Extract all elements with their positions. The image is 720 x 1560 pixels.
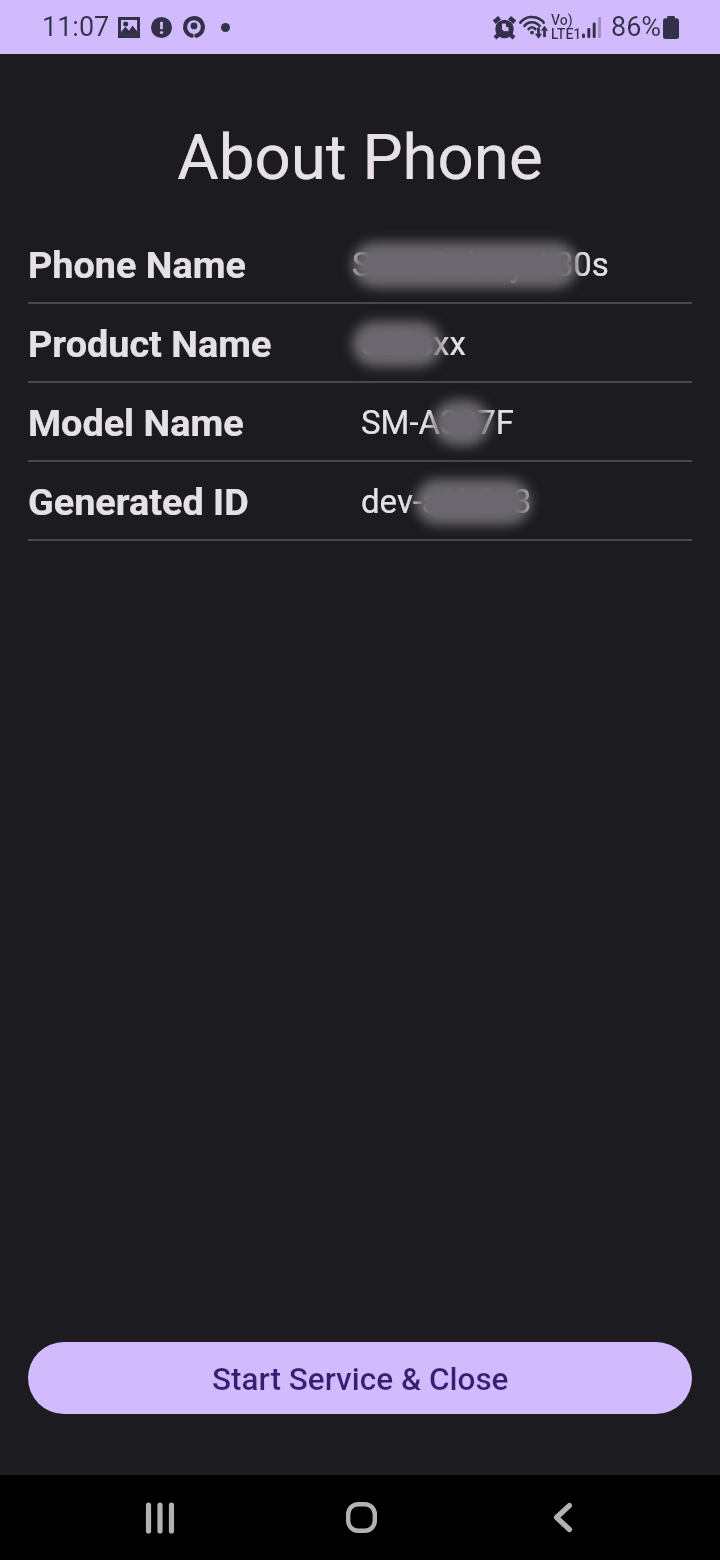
button[interactable]: Back [443, 1475, 683, 1560]
staticText: 86% [611, 11, 662, 43]
staticText: 11:07 [42, 11, 110, 43]
button[interactable]: Generated ID [0, 462, 720, 541]
staticText: About Phone [0, 120, 720, 195]
button[interactable]: Home [241, 1475, 481, 1560]
staticText: LTE1 [551, 26, 582, 42]
staticText: Sam Galaxy A30s [352, 245, 609, 284]
staticText: Start Service & Close [212, 1361, 509, 1398]
staticText: SM-A307F [361, 403, 514, 442]
button[interactable]: Recent apps [40, 1475, 280, 1560]
staticText: Vo) [551, 12, 573, 28]
staticText: Generated ID [28, 480, 249, 524]
staticText: dev-a1b2c3 [361, 482, 532, 521]
staticText: a30sxx [361, 324, 466, 363]
staticText: Phone Name [28, 243, 246, 287]
button[interactable]: Model Name [0, 383, 720, 462]
staticText: Product Name [28, 322, 272, 366]
button[interactable]: Start Service & Close [28, 1342, 692, 1414]
staticText: Model Name [28, 401, 244, 445]
button[interactable]: Phone Name [0, 225, 720, 304]
button[interactable]: Product Name [0, 304, 720, 383]
